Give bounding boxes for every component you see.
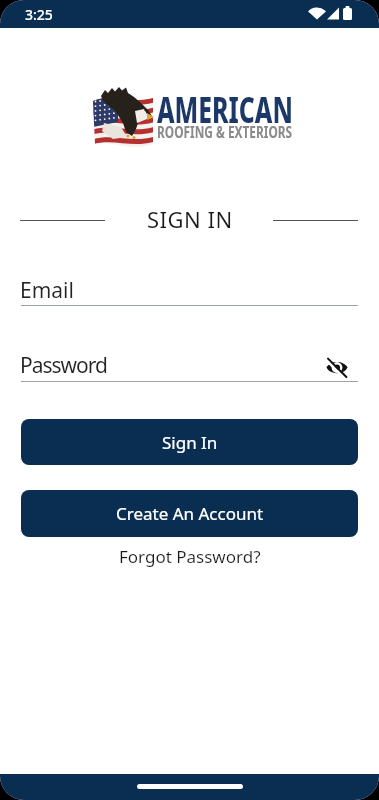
button[interactable] xyxy=(137,784,243,789)
button[interactable]: Password xyxy=(21,350,358,382)
staticText: SIGN IN xyxy=(147,204,233,234)
staticText: Email xyxy=(20,276,74,305)
button[interactable]: Sign In xyxy=(21,419,358,465)
button[interactable] xyxy=(325,356,349,380)
staticText: Sign In xyxy=(162,431,218,454)
button[interactable]: Create An Account xyxy=(21,490,358,537)
button[interactable]: Email xyxy=(21,274,358,306)
staticText: Password xyxy=(20,351,107,380)
staticText: 3:25 xyxy=(25,5,53,24)
staticText: ROOFING & EXTERIORS xyxy=(157,121,292,142)
staticText: Create An Account xyxy=(116,502,264,525)
button[interactable]: Forgot Password? xyxy=(119,545,261,568)
staticText: AMERICAN xyxy=(157,85,293,134)
